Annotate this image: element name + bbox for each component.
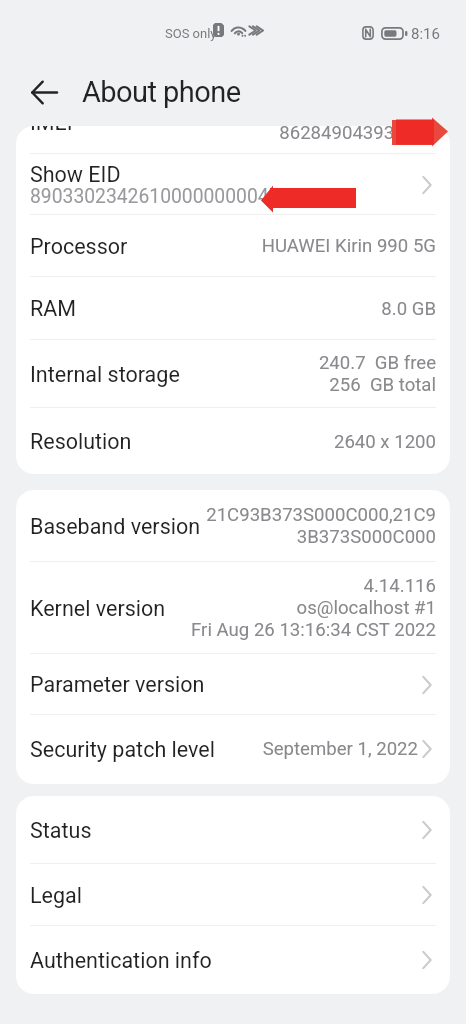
- staticText: Baseband version: [30, 514, 201, 539]
- staticText: 256 GB total: [329, 374, 436, 396]
- staticText: September 1, 2022: [262, 738, 418, 760]
- button[interactable]: Resolution: [16, 408, 450, 474]
- staticText: 240.7 GB free: [318, 352, 436, 374]
- staticText: 8:16: [411, 25, 440, 43]
- staticText: Kernel version: [30, 596, 166, 621]
- staticText: 8.0 GB: [381, 298, 436, 320]
- staticText: Fri Aug 26 13:16:34 CST 2022: [191, 619, 436, 641]
- staticText: Resolution: [30, 429, 132, 454]
- button[interactable]: Status: [16, 796, 450, 864]
- staticText: Processor: [30, 234, 128, 259]
- staticText: Security patch level: [30, 737, 215, 762]
- button[interactable]: Legal: [16, 864, 450, 926]
- button[interactable]: Show EID: [16, 154, 450, 215]
- button[interactable]: Security patch level: [16, 715, 450, 783]
- staticText: 8903302342610000000004: [30, 185, 269, 208]
- button[interactable]: Processor: [16, 215, 450, 277]
- button[interactable]: Parameter version: [16, 654, 450, 715]
- staticText: os@localhost #1: [296, 597, 436, 619]
- staticText: 21C93B373S000C000,21C9: [206, 504, 436, 526]
- staticText: SOS only: [165, 26, 217, 41]
- staticText: Status: [30, 818, 92, 843]
- staticText: Parameter version: [30, 672, 205, 697]
- staticText: Authentication info: [30, 948, 212, 973]
- staticText: 2640 x 1200: [333, 431, 436, 453]
- staticText: IMEI: [30, 126, 73, 135]
- button[interactable]: IMEI: [16, 126, 450, 154]
- staticText: RAM: [30, 296, 77, 321]
- staticText: Internal storage: [30, 362, 180, 387]
- button[interactable]: Kernel version: [16, 562, 450, 654]
- staticText: Show EID: [30, 162, 121, 187]
- button[interactable]: Authentication info: [16, 926, 450, 994]
- button[interactable]: Internal storage: [16, 340, 450, 408]
- button[interactable]: Back: [26, 74, 62, 110]
- staticText: 862849043930000: [279, 126, 436, 144]
- staticText: 3B373S000C000: [296, 526, 436, 548]
- button[interactable]: Baseband version: [16, 490, 450, 562]
- staticText: 4.14.116: [363, 575, 436, 597]
- staticText: About phone: [82, 75, 241, 109]
- staticText: HUAWEI Kirin 990 5G: [261, 235, 436, 257]
- button[interactable]: RAM: [16, 277, 450, 340]
- staticText: Legal: [30, 883, 82, 908]
